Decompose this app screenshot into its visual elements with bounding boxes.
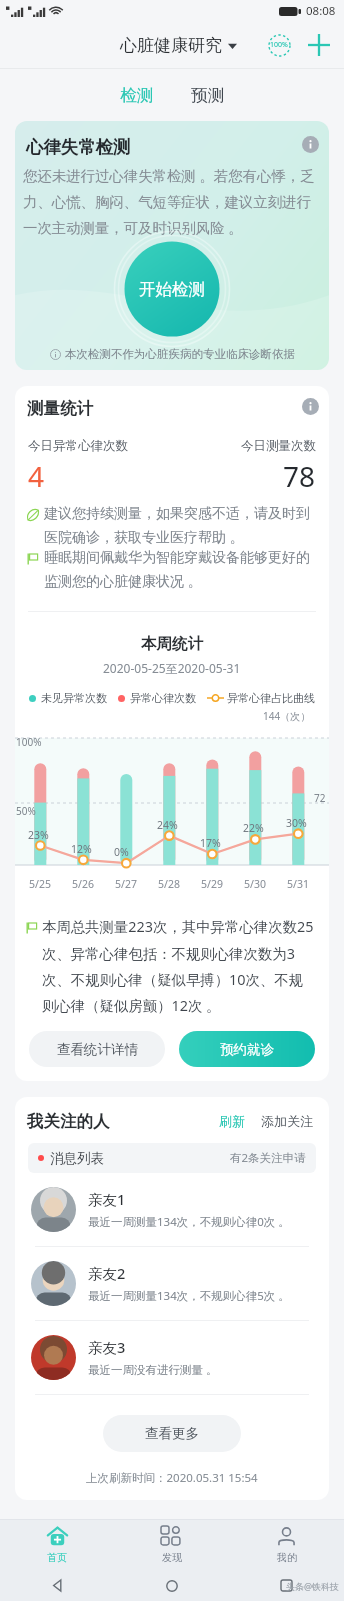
staticText: 17% xyxy=(200,836,221,850)
staticText: 首页 xyxy=(47,1551,67,1564)
staticText: 本周统计 xyxy=(141,634,203,654)
staticText: 12% xyxy=(71,842,92,856)
button[interactable]: Back xyxy=(0,1570,114,1601)
staticText: 查看统计详情 xyxy=(57,1041,138,1058)
staticText: 30% xyxy=(286,816,307,830)
button[interactable]: 检测 xyxy=(101,68,173,116)
staticText: 刷新 xyxy=(219,1113,245,1129)
staticText: 查看更多 xyxy=(145,1425,199,1442)
button[interactable]: 我的 xyxy=(229,1520,344,1570)
button[interactable]: 首页 xyxy=(0,1520,114,1570)
staticText: 预测 xyxy=(191,85,225,106)
button[interactable]: 预约就诊 xyxy=(179,1031,315,1067)
staticText: 消息列表 xyxy=(50,1150,104,1167)
staticText: 今日异常心律次数 xyxy=(28,438,128,454)
other: Back xyxy=(52,1580,63,1591)
staticText: 24% xyxy=(157,818,178,832)
button[interactable]: 亲友3 xyxy=(31,1321,313,1394)
staticText: 5/25 xyxy=(29,877,51,891)
staticText: 5/30 xyxy=(244,877,266,891)
staticText: 5/29 xyxy=(201,877,223,891)
staticText: 有2条关注申请 xyxy=(230,1150,306,1166)
staticText: 78 xyxy=(283,457,316,495)
staticText: 发现 xyxy=(162,1551,182,1564)
staticText: 亲友3 xyxy=(88,1337,126,1357)
staticText: 144（次） xyxy=(263,709,311,723)
staticText: 4 xyxy=(28,457,45,495)
button[interactable]: Home xyxy=(114,1570,229,1601)
staticText: 本次检测不作为心脏疾病的专业临床诊断依据 xyxy=(65,347,295,361)
staticText: 最近一周测量134次，不规则心律5次 。 xyxy=(88,1288,290,1304)
button[interactable]: Recents xyxy=(229,1570,344,1601)
staticText: 心脏健康研究 xyxy=(120,35,222,56)
staticText: 上次刷新时间：2020.05.31 15:54 xyxy=(86,1470,258,1486)
staticText: 最近一周测量134次，不规则心律0次 。 xyxy=(88,1214,290,1230)
staticText: 未见异常次数 xyxy=(41,691,107,705)
staticText: 0% xyxy=(114,845,129,859)
other: Recents xyxy=(281,1580,292,1591)
staticText: 72 xyxy=(314,791,326,805)
staticText: 5/27 xyxy=(115,877,137,891)
button[interactable]: 发现 xyxy=(114,1520,229,1570)
staticText: 我的 xyxy=(277,1551,297,1564)
button[interactable]: Battery 100 percent xyxy=(266,32,292,58)
staticText: 22% xyxy=(243,821,264,835)
staticText: 异常心律次数 xyxy=(130,691,196,705)
staticText: 添加关注 xyxy=(261,1113,313,1129)
button[interactable]: 心脏健康研究 xyxy=(120,35,237,56)
staticText: 23% xyxy=(28,828,49,842)
button[interactable]: Add xyxy=(306,32,332,58)
staticText: 头条@铁科技 xyxy=(286,1580,340,1592)
staticText: 本周总共测量223次，其中异常心律次数25 次、异常心律包括：不规则心律次数为3… xyxy=(42,917,314,1015)
button[interactable]: Info xyxy=(302,136,319,153)
staticText: 今日测量次数 xyxy=(241,438,316,454)
staticText: 2020-05-25至2020-05-31 xyxy=(103,660,241,676)
other: Home xyxy=(166,1580,178,1592)
staticText: 睡眠期间佩戴华为智能穿戴设备能够更好的监测您的心脏健康状况 。 xyxy=(44,549,316,591)
staticText: 心律失常检测 xyxy=(26,136,131,158)
staticText: 100% xyxy=(270,40,288,50)
staticText: 5/31 xyxy=(287,877,309,891)
button[interactable]: 查看统计详情 xyxy=(29,1031,165,1067)
button[interactable]: 亲友1 xyxy=(31,1173,313,1246)
staticText: 预约就诊 xyxy=(220,1041,274,1058)
button[interactable]: 刷新 xyxy=(215,1109,249,1133)
staticText: 亲友1 xyxy=(88,1189,126,1209)
staticText: 测量统计 xyxy=(27,398,93,419)
staticText: 亲友2 xyxy=(88,1263,126,1283)
staticText: 08:08 xyxy=(306,3,336,19)
button[interactable]: 消息列表 xyxy=(28,1143,316,1173)
staticText: 100% xyxy=(16,735,42,749)
button[interactable]: 开始检测 xyxy=(113,230,231,348)
staticText: 5/28 xyxy=(158,877,180,891)
staticText: 您还未进行过心律失常检测 。若您有心悸，乏力、心慌、胸闷、气短等症状，建议立刻进… xyxy=(23,166,315,237)
staticText: 我关注的人 xyxy=(27,1111,110,1132)
staticText: 建议您持续测量，如果突感不适，请及时到医院确诊，获取专业医疗帮助 。 xyxy=(44,505,316,547)
staticText: 5/26 xyxy=(72,877,94,891)
staticText: 异常心律占比曲线 xyxy=(227,691,315,705)
staticText: 检测 xyxy=(120,85,154,106)
button[interactable]: Info xyxy=(302,398,319,415)
button[interactable]: 亲友2 xyxy=(31,1247,313,1320)
staticText: 开始检测 xyxy=(139,279,205,300)
button[interactable]: 查看更多 xyxy=(103,1415,241,1452)
staticText: 最近一周没有进行测量 。 xyxy=(88,1362,218,1378)
staticText: 50% xyxy=(16,804,36,818)
button[interactable]: 预测 xyxy=(173,68,243,112)
button[interactable]: 添加关注 xyxy=(257,1109,317,1133)
